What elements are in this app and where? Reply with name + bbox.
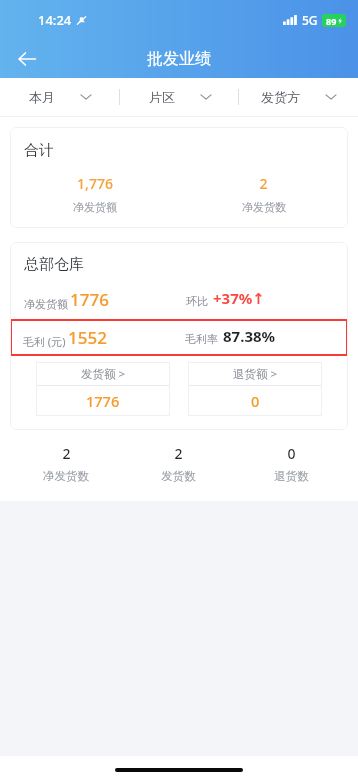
staticText: 净发货额 [73,200,117,214]
staticText: 1,776 [77,174,113,193]
button[interactable]: 毛利 (元) [10,319,348,356]
button[interactable]: 退货额 > [188,362,322,416]
button[interactable]: 片区 [120,78,239,116]
button[interactable]: 合计 [10,127,348,228]
staticText: 1552 [68,326,107,349]
staticText: 87.38% [223,326,276,346]
staticText: 2 [174,444,183,463]
staticText: 总部仓库 [24,255,84,274]
button[interactable]: 0 [235,444,348,483]
staticText: 1776 [86,391,120,411]
staticText: 退货额 > [233,366,278,382]
staticText: 发货方 [261,89,300,105]
staticText: 1776 [70,288,109,311]
staticText: 发货额 > [81,366,126,382]
button[interactable]: 本月 [0,78,120,116]
staticText: 2 [62,444,71,463]
staticText: 14:24 [38,11,72,29]
staticText: 环比 [186,294,208,308]
button[interactable]: 发货额 > [36,362,170,416]
staticText: 净发货数 [43,469,89,483]
staticText: 片区 [149,89,175,105]
staticText: 5G [302,12,318,28]
staticText: 净发货额 [24,297,68,311]
button[interactable]: Back [8,40,46,78]
staticText: 净发货数 [242,200,286,214]
staticText: 退货数 [274,469,309,483]
button[interactable]: 2 [122,444,235,483]
staticText: 发货数 [161,469,196,483]
staticText: 毛利率 [185,332,218,346]
staticText: 批发业绩 [147,49,211,69]
staticText: +37%↑ [213,288,265,308]
staticText: 89 [326,15,337,27]
staticText: 合计 [24,141,54,160]
button[interactable]: 发货方 [239,78,358,116]
staticText: 2 [259,174,268,193]
staticText: 0 [251,391,260,411]
button[interactable]: 2 [10,444,122,483]
staticText: 本月 [29,89,55,105]
staticText: 毛利 (元) [23,334,66,349]
staticText: 0 [287,444,296,463]
